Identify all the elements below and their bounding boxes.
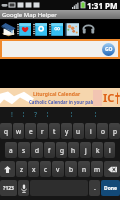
button[interactable]: i <box>85 123 96 139</box>
button[interactable]: s <box>18 142 30 158</box>
staticText: e <box>29 127 33 136</box>
staticText: f <box>48 146 51 155</box>
staticText: z <box>20 165 24 174</box>
staticText: b <box>69 165 73 174</box>
button[interactable]: Contacts <box>48 21 64 37</box>
staticText: ! <box>11 110 13 120</box>
staticText: 1:31 PM <box>87 0 118 10</box>
button[interactable]: m <box>91 161 103 177</box>
button[interactable]: n <box>78 161 90 177</box>
button[interactable]: ! <box>0 107 24 123</box>
staticText: v <box>56 165 60 174</box>
button[interactable]: z <box>16 161 27 177</box>
button[interactable]: t <box>49 123 60 139</box>
button[interactable]: c <box>40 161 51 177</box>
staticText: Catholic Calendar in your palm <box>29 99 97 105</box>
button[interactable] <box>72 107 96 123</box>
button[interactable]: Contacts <box>32 21 48 37</box>
button[interactable]: v <box>52 161 64 177</box>
button[interactable]: k <box>92 142 103 158</box>
staticText: ?123 <box>3 185 14 192</box>
button[interactable]: GO <box>102 43 115 56</box>
button[interactable]: Audio <box>80 21 96 37</box>
staticText: ? <box>34 110 38 120</box>
button[interactable]: a <box>5 142 17 158</box>
staticText: k <box>96 146 100 155</box>
button[interactable]: Voice input <box>18 180 29 196</box>
staticText: o <box>101 127 105 136</box>
button[interactable]: ?123 <box>0 180 17 196</box>
button[interactable]: h <box>68 142 79 158</box>
staticText: GO <box>105 46 113 53</box>
staticText: x <box>32 165 36 174</box>
staticText: d <box>35 146 39 155</box>
button[interactable]: Done <box>101 180 120 196</box>
staticText: l <box>109 146 111 155</box>
staticText: . <box>94 183 96 193</box>
button[interactable]: p <box>109 123 120 139</box>
button[interactable]: Shift <box>0 161 15 177</box>
staticText: m <box>94 165 101 174</box>
button[interactable]: g <box>56 142 67 158</box>
staticText: r <box>41 127 44 136</box>
staticText: Liturgical Calendar <box>29 91 81 98</box>
button[interactable]: ? <box>24 107 48 123</box>
button[interactable]: l <box>104 142 115 158</box>
button[interactable]: f <box>44 142 55 158</box>
button[interactable]: Home <box>0 21 16 37</box>
button[interactable] <box>48 107 72 123</box>
button[interactable]: j <box>80 142 91 158</box>
button[interactable]: Liturgical Calendar <box>0 88 120 107</box>
button[interactable]: b <box>65 161 77 177</box>
staticText: t <box>53 127 56 136</box>
staticText: j <box>85 146 87 155</box>
staticText: q <box>4 127 8 136</box>
button[interactable]: o <box>97 123 108 139</box>
staticText: n <box>82 165 87 174</box>
button[interactable]: r <box>37 123 48 139</box>
button[interactable]: . <box>89 180 100 196</box>
button[interactable]: e <box>25 123 36 139</box>
staticText: c <box>44 165 48 174</box>
staticText: w <box>16 127 22 136</box>
button[interactable]: Contacts <box>16 21 32 37</box>
button[interactable]: w <box>13 123 24 139</box>
staticText: p <box>113 127 117 136</box>
staticText: g <box>60 146 64 155</box>
staticText: s <box>22 146 26 155</box>
button[interactable]: q <box>0 123 12 139</box>
staticText: IC <box>103 90 115 105</box>
staticText: u <box>76 127 81 136</box>
button[interactable]: u <box>73 123 84 139</box>
button[interactable]: y <box>61 123 72 139</box>
staticText: i <box>90 127 92 136</box>
staticText: y <box>65 127 69 136</box>
staticText: Google Map Helper <box>2 11 57 19</box>
button[interactable]: Backspace <box>104 161 120 177</box>
button[interactable]: World map <box>64 21 80 37</box>
button[interactable]: d <box>31 142 43 158</box>
staticText: h <box>71 146 76 155</box>
staticText: a <box>9 146 13 155</box>
staticText: Done <box>104 185 118 192</box>
button[interactable]: x <box>28 161 39 177</box>
